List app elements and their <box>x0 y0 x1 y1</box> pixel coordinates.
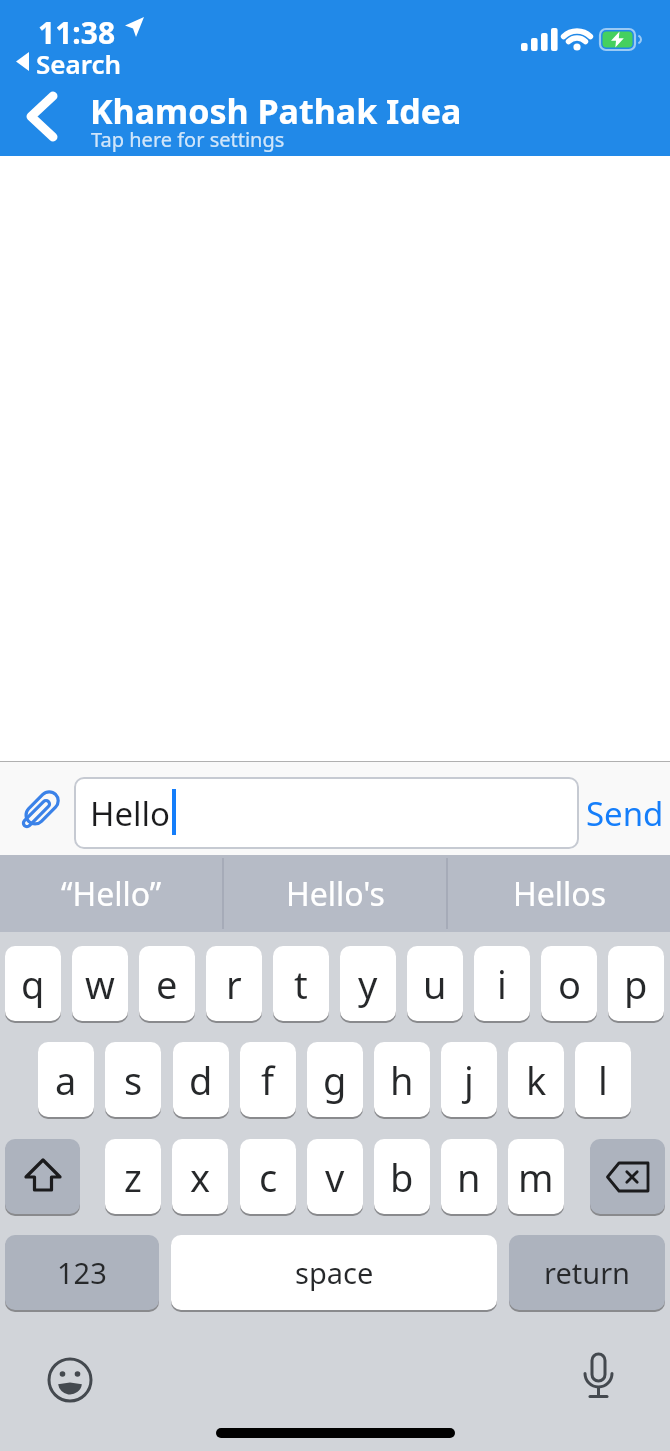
staticText: return <box>544 1253 631 1292</box>
staticText: t <box>294 958 308 1010</box>
staticText: Hello's <box>286 872 385 916</box>
staticText: Tap here for settings <box>91 126 285 152</box>
staticText: f <box>261 1054 275 1106</box>
staticText: c <box>259 1151 278 1203</box>
staticText: Hello <box>90 791 171 836</box>
staticText: p <box>624 958 648 1010</box>
staticText: h <box>390 1054 414 1106</box>
staticText: a <box>55 1054 77 1106</box>
staticText: Send <box>586 791 664 836</box>
staticText: q <box>21 958 45 1010</box>
staticText: k <box>526 1054 547 1106</box>
staticText: Khamosh Pathak Idea <box>90 88 462 128</box>
staticText: e <box>156 958 178 1010</box>
staticText: l <box>598 1054 608 1106</box>
staticText: “Hello” <box>61 872 162 916</box>
staticText: Hellos <box>513 872 606 916</box>
staticText: z <box>124 1151 142 1203</box>
staticText: w <box>85 958 115 1010</box>
staticText: n <box>457 1151 481 1203</box>
staticText: r <box>226 958 242 1010</box>
staticText: x <box>190 1151 211 1203</box>
staticText: d <box>189 1054 213 1106</box>
staticText: g <box>323 1054 347 1106</box>
staticText: s <box>124 1054 143 1106</box>
staticText: 123 <box>57 1253 107 1292</box>
staticText: m <box>518 1151 554 1203</box>
staticText: y <box>358 958 378 1010</box>
staticText: u <box>423 958 447 1010</box>
staticText: i <box>497 958 507 1010</box>
staticText: v <box>325 1151 345 1203</box>
staticText: space <box>295 1253 374 1292</box>
staticText: j <box>464 1054 474 1106</box>
staticText: Search <box>36 46 122 76</box>
staticText: o <box>558 958 581 1010</box>
staticText: 11:38 <box>38 12 116 44</box>
staticText: b <box>390 1151 414 1203</box>
